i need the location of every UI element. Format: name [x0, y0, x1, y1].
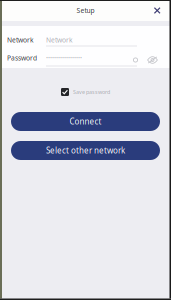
- button[interactable]: Select other network: [11, 141, 160, 160]
- button[interactable]: Show password: [145, 54, 160, 65]
- staticText: Network: [46, 36, 73, 44]
- staticText: Network: [7, 36, 34, 44]
- staticText: Password: [7, 54, 37, 62]
- button[interactable]: Close: [150, 4, 164, 17]
- button[interactable]: Connect: [11, 112, 160, 131]
- staticText: ••••••••••••••••••: [46, 54, 82, 62]
- staticText: Save password: [73, 88, 110, 96]
- button[interactable]: Save password: [61, 88, 110, 96]
- button[interactable]: Clear password: [130, 54, 141, 65]
- staticText: Setup: [76, 6, 94, 15]
- staticText: Connect: [69, 116, 101, 127]
- staticText: Select other network: [46, 145, 125, 156]
